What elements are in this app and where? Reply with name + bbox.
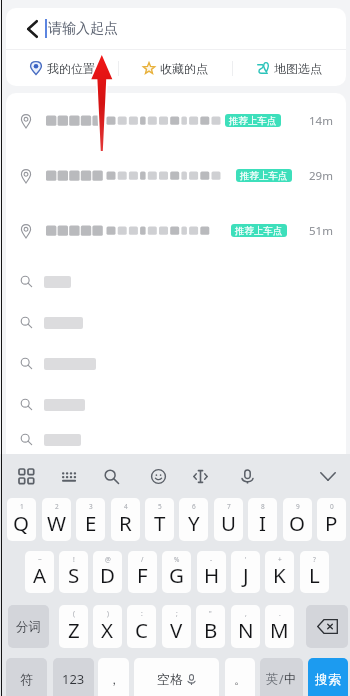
button[interactable]: 收藏的点 — [119, 50, 232, 86]
staticText: I — [259, 509, 266, 537]
staticText: ? — [313, 555, 316, 564]
button[interactable]: : — [127, 605, 156, 648]
staticText: 29m — [309, 168, 333, 184]
staticText: 我的位置 — [47, 61, 95, 76]
button[interactable]: 。 — [225, 658, 255, 696]
staticText: H — [204, 561, 220, 589]
button[interactable]: . — [265, 605, 294, 648]
button[interactable]: Apps — [11, 461, 41, 491]
staticText: ' — [245, 555, 247, 564]
button[interactable]: Back — [14, 8, 50, 49]
staticText: E — [85, 509, 97, 537]
button[interactable]: Hide keyboard — [313, 461, 343, 491]
staticText: 空格 — [157, 671, 183, 687]
button[interactable] — [6, 302, 346, 343]
staticText: 0 — [330, 502, 334, 511]
button[interactable]: 8 — [248, 498, 277, 541]
staticText: Z — [68, 616, 80, 644]
staticText: L — [309, 561, 320, 589]
staticText: S — [68, 561, 80, 589]
staticText: 14m — [309, 113, 333, 129]
button[interactable]: 123 — [53, 658, 94, 696]
button[interactable]: ' — [231, 551, 260, 593]
button[interactable]: 9 — [283, 498, 312, 541]
button[interactable]: ! — [59, 551, 88, 593]
button[interactable]: Search — [96, 461, 126, 491]
button[interactable]: Emoji — [143, 461, 173, 491]
button[interactable]: " — [196, 605, 225, 648]
staticText: C — [135, 616, 148, 644]
button[interactable]: @ — [93, 551, 122, 593]
staticText: P — [325, 509, 338, 537]
button[interactable]: % — [162, 551, 191, 593]
staticText: 地图选点 — [274, 61, 322, 76]
button[interactable]: Backspace — [306, 605, 348, 648]
staticText: G — [169, 561, 184, 589]
button[interactable] — [6, 425, 346, 454]
button[interactable]: 3 — [76, 498, 105, 541]
staticText: 6 — [192, 502, 196, 511]
button[interactable]: ) — [93, 605, 122, 648]
button[interactable]: 4 — [111, 498, 140, 541]
staticText: U — [221, 509, 236, 537]
button[interactable]: 推荐上车点 — [6, 203, 346, 258]
staticText: 2 — [55, 502, 59, 511]
button[interactable]: 6 — [179, 498, 208, 541]
button[interactable]: 推荐上车点 — [6, 148, 346, 203]
button[interactable]: - — [197, 551, 226, 593]
button[interactable]: 空格 — [134, 658, 219, 696]
staticText: ~ — [38, 555, 42, 564]
button[interactable]: 2 — [42, 498, 71, 541]
staticText: 推荐上车点 — [240, 170, 288, 182]
button[interactable]: ; — [162, 605, 191, 648]
button[interactable] — [6, 261, 346, 302]
button[interactable]: 搜索 — [308, 658, 348, 696]
staticText: ， — [108, 672, 120, 687]
staticText: 推荐上车点 — [229, 115, 277, 127]
button[interactable]: ~ — [25, 551, 54, 593]
button[interactable]: Edit text — [185, 461, 215, 491]
staticText: 123 — [62, 670, 85, 688]
staticText: / — [279, 671, 284, 688]
button[interactable] — [6, 343, 346, 384]
button[interactable] — [6, 384, 346, 425]
button[interactable]: 推荐上车点 — [6, 93, 346, 148]
button[interactable]: / — [128, 551, 157, 593]
button[interactable]: ( — [59, 605, 88, 648]
staticText: / — [141, 555, 144, 564]
staticText: K — [273, 561, 286, 589]
button[interactable]: 地图选点 — [233, 50, 346, 86]
staticText: 5 — [158, 502, 162, 511]
staticText: . — [279, 609, 281, 618]
button[interactable]: , — [231, 605, 260, 648]
button[interactable]: 0 — [317, 498, 346, 541]
button[interactable]: 我的位置 — [6, 50, 118, 86]
staticText: 推荐上车点 — [235, 225, 283, 237]
staticText: R — [119, 509, 132, 537]
staticText: J — [243, 561, 249, 589]
staticText: F — [137, 561, 148, 589]
staticText: % — [174, 555, 180, 564]
button[interactable]: + — [265, 551, 294, 593]
button[interactable]: 7 — [214, 498, 243, 541]
button[interactable]: 符 — [6, 658, 47, 696]
button[interactable]: Keyboard — [54, 461, 84, 491]
staticText: - — [210, 555, 213, 564]
staticText: Y — [188, 509, 200, 537]
staticText: 7 — [227, 502, 231, 511]
button[interactable]: 分词 — [8, 605, 49, 648]
staticText: M — [270, 616, 289, 644]
button[interactable]: ? — [300, 551, 329, 593]
button[interactable]: 英 — [260, 658, 303, 696]
staticText: 51m — [309, 223, 333, 239]
button[interactable]: 5 — [145, 498, 174, 541]
staticText: X — [101, 616, 114, 644]
staticText: A — [33, 561, 47, 589]
staticText: + — [278, 555, 282, 564]
staticText: " — [209, 609, 212, 618]
button[interactable]: ， — [98, 658, 129, 696]
staticText: W — [47, 509, 67, 537]
button[interactable]: Voice input — [232, 461, 262, 491]
staticText: 英 — [266, 671, 279, 687]
button[interactable]: 1 — [7, 498, 36, 541]
